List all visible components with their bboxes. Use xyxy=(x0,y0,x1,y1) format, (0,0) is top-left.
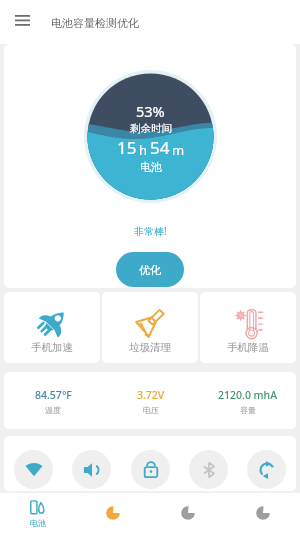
staticText: h xyxy=(139,141,148,159)
button[interactable]: Rotate xyxy=(247,450,286,489)
button[interactable]: Tab xyxy=(150,493,225,533)
staticText: 15 xyxy=(117,136,137,159)
button[interactable]: 优化 xyxy=(116,252,184,287)
staticText: 容量 xyxy=(240,405,256,415)
staticText: 3.72V xyxy=(137,388,165,402)
button[interactable]: 垃圾清理 xyxy=(102,292,198,363)
staticText: 手机降温 xyxy=(227,341,269,354)
staticText: 电压 xyxy=(143,405,159,415)
button[interactable]: Volume xyxy=(72,450,111,489)
button[interactable]: Bluetooth xyxy=(189,450,228,489)
staticText: 2120.0 mhA xyxy=(218,388,278,402)
button[interactable]: Tab xyxy=(75,493,150,533)
button[interactable]: Lock xyxy=(131,450,170,489)
staticText: 53% xyxy=(136,101,165,121)
staticText: m xyxy=(172,141,185,159)
staticText: 电池容量检测优化 xyxy=(51,16,139,30)
staticText: 电池 xyxy=(140,160,162,174)
staticText: 电池 xyxy=(30,518,46,528)
button[interactable]: Wifi xyxy=(14,450,53,489)
button[interactable]: 手机加速 xyxy=(4,292,100,363)
staticText: 剩余时间 xyxy=(130,122,172,135)
staticText: 非常棒! xyxy=(134,224,167,238)
button[interactable]: 手机降温 xyxy=(200,292,296,363)
staticText: 温度 xyxy=(45,405,61,415)
button[interactable]: Menu xyxy=(0,0,44,44)
staticText: 垃圾清理 xyxy=(129,341,171,354)
staticText: 优化 xyxy=(139,263,161,277)
staticText: 54 xyxy=(150,136,170,159)
staticText: 手机加速 xyxy=(31,341,73,354)
button[interactable]: Tab xyxy=(225,493,300,533)
button[interactable]: 电池 xyxy=(0,493,75,533)
staticText: 84.57°F xyxy=(35,388,72,402)
